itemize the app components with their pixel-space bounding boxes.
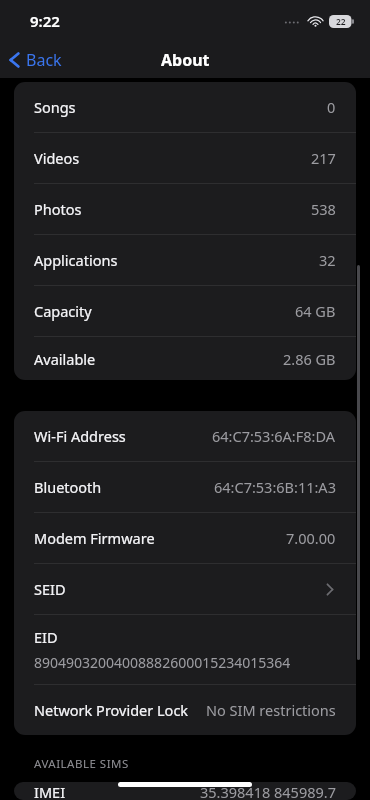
staticText: 22 bbox=[336, 16, 346, 28]
button[interactable]: SEID bbox=[14, 564, 356, 614]
staticText: EID bbox=[34, 627, 58, 647]
staticText: 0 bbox=[327, 97, 336, 117]
button[interactable]: Capacity bbox=[14, 286, 356, 336]
staticText: Available bbox=[34, 349, 96, 369]
button[interactable]: Back bbox=[0, 45, 72, 75]
button[interactable]: Photos bbox=[14, 184, 356, 234]
staticText: 64:C7:53:6A:F8:DA bbox=[212, 426, 336, 446]
button[interactable]: Network Provider Lock bbox=[14, 685, 356, 735]
staticText: AVAILABLE SIMS bbox=[34, 756, 129, 772]
staticText: 64:C7:53:6B:11:A3 bbox=[214, 477, 336, 497]
staticText: Network Provider Lock bbox=[34, 700, 189, 720]
staticText: 89049032004008882600015234015364 bbox=[34, 653, 291, 672]
staticText: Videos bbox=[34, 148, 80, 168]
staticText: Songs bbox=[34, 97, 76, 117]
staticText: 538 bbox=[311, 199, 336, 219]
button[interactable]: IMEI bbox=[14, 782, 356, 800]
button[interactable]: Available bbox=[14, 337, 356, 380]
staticText: Wi-Fi Address bbox=[34, 426, 126, 446]
button[interactable]: Modem Firmware bbox=[14, 513, 356, 563]
staticText: 217 bbox=[311, 148, 336, 168]
staticText: 9:22 bbox=[30, 11, 60, 31]
staticText: 2.86 GB bbox=[283, 349, 336, 369]
staticText: IMEI bbox=[34, 782, 66, 800]
staticText: Modem Firmware bbox=[34, 528, 155, 548]
staticText: Bluetooth bbox=[34, 477, 102, 497]
staticText: Applications bbox=[34, 250, 118, 270]
staticText: Photos bbox=[34, 199, 82, 219]
staticText: 7.00.00 bbox=[286, 528, 336, 548]
staticText: 35.398418 845989.7 bbox=[200, 782, 336, 800]
button[interactable]: Bluetooth bbox=[14, 462, 356, 512]
staticText: 32 bbox=[319, 250, 336, 270]
other: Open SEID bbox=[326, 583, 334, 596]
staticText: About bbox=[161, 49, 210, 71]
button[interactable]: Applications bbox=[14, 235, 356, 285]
button[interactable]: Videos bbox=[14, 133, 356, 183]
staticText: Capacity bbox=[34, 301, 92, 321]
staticText: Back bbox=[26, 49, 62, 71]
button[interactable]: EID bbox=[14, 615, 356, 684]
button[interactable]: Songs bbox=[14, 82, 356, 132]
staticText: No SIM restrictions bbox=[206, 700, 336, 720]
staticText: 64 GB bbox=[295, 301, 336, 321]
staticText: SEID bbox=[34, 579, 66, 599]
button[interactable]: Wi-Fi Address bbox=[14, 411, 356, 461]
